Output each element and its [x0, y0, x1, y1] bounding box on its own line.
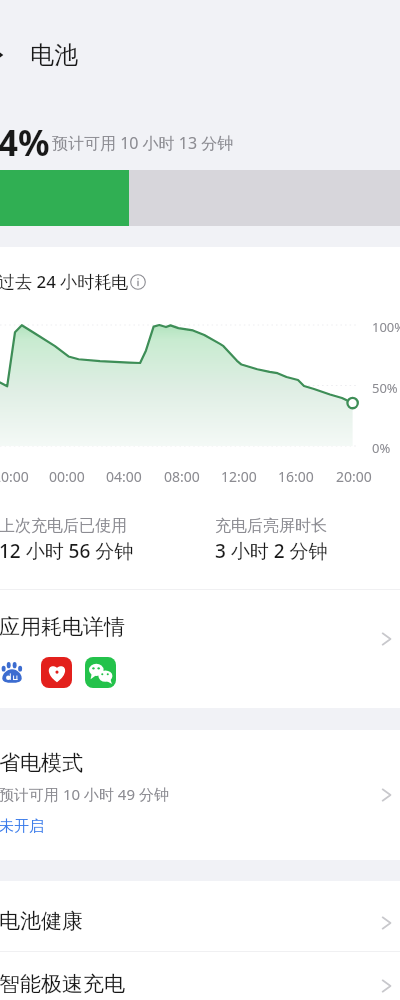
staticText: 0%: [372, 439, 391, 457]
staticText: 未开启: [0, 817, 44, 836]
button[interactable]: Back: [0, 33, 17, 77]
staticText: 智能极速充电: [0, 971, 125, 997]
button[interactable]: 省电模式: [0, 730, 400, 860]
button[interactable]: 应用耗电详情: [0, 590, 400, 708]
staticText: 省电模式: [0, 750, 83, 776]
staticText: 12 小时 56 分钟: [0, 538, 134, 564]
staticText: 3 小时 2 分钟: [215, 538, 328, 564]
staticText: 08:00: [164, 467, 200, 486]
staticText: 应用耗电详情: [0, 614, 125, 640]
button[interactable]: 智能极速充电: [0, 952, 400, 1000]
staticText: 20:00: [336, 467, 372, 486]
staticText: 12:00: [221, 467, 257, 486]
staticText: 过去 24 小时耗电: [0, 270, 129, 293]
staticText: 充电后亮屏时长: [215, 516, 327, 536]
staticText: 电池健康: [0, 908, 83, 934]
staticText: 20:00: [0, 467, 29, 486]
staticText: 04:00: [106, 467, 142, 486]
staticText: 16:00: [278, 467, 314, 486]
staticText: 预计可用 10 小时 49 分钟: [0, 784, 169, 804]
staticText: 34%: [0, 119, 50, 167]
staticText: 上次充电后已使用: [0, 516, 127, 536]
button[interactable]: 电池健康: [0, 881, 400, 951]
staticText: 预计可用 10 小时 13 分钟: [52, 132, 234, 154]
staticText: 00:00: [49, 467, 85, 486]
staticText: 50%: [372, 379, 398, 397]
staticText: 100%: [372, 318, 400, 336]
staticText: 电池: [30, 40, 78, 70]
